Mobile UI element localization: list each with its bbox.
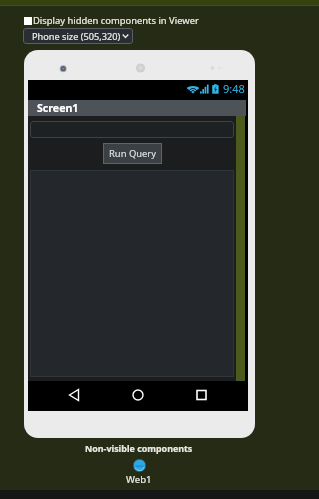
button[interactable]: Web1 component [133, 459, 146, 472]
staticText: Screen1 [37, 101, 79, 115]
staticText: Run Query [109, 147, 156, 160]
staticText: Phone size (505,320) [32, 30, 121, 43]
staticText: Non-visible components [85, 442, 193, 454]
button[interactable] [30, 121, 234, 138]
staticText: 9:48 [223, 81, 245, 96]
staticText: Display hidden components in Viewer [33, 14, 199, 27]
button[interactable]: Phone size (505,320) [23, 28, 133, 44]
button[interactable]: Run Query [103, 143, 162, 164]
staticText: Web1 [126, 473, 152, 486]
button[interactable]: Display hidden components in Viewer [24, 14, 199, 27]
